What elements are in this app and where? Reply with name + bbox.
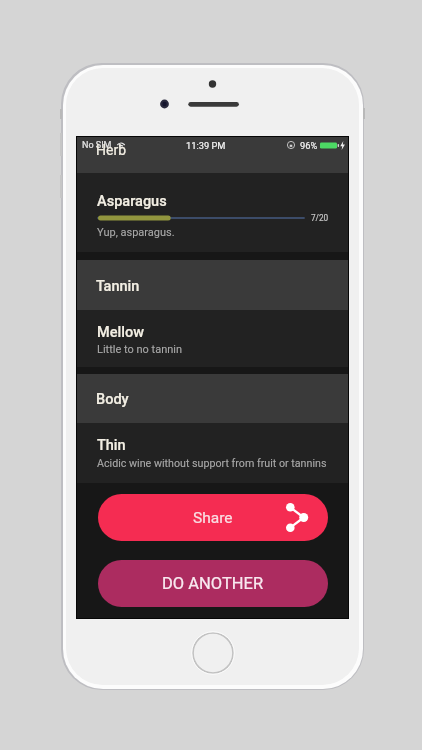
button[interactable]: Tannin — [77, 260, 348, 310]
staticText: Asparagus — [97, 193, 167, 210]
staticText: Little to no tannin — [97, 343, 183, 356]
staticText: Share — [193, 509, 233, 527]
button[interactable]: DO ANOTHER — [98, 560, 328, 607]
staticText: Thin — [97, 437, 126, 454]
button[interactable]: Thin — [77, 423, 348, 483]
staticText: Tannin — [96, 278, 140, 295]
staticText: 7/20 — [311, 213, 329, 223]
button[interactable]: Share — [98, 494, 328, 541]
staticText: Acidic wine without support from fruit o… — [97, 457, 327, 470]
other: Share — [286, 503, 308, 532]
button[interactable]: Asparagus — [77, 173, 348, 252]
staticText: Body — [96, 391, 129, 408]
staticText: 96% — [300, 140, 318, 151]
staticText: DO ANOTHER — [162, 574, 264, 593]
staticText: Mellow — [97, 324, 144, 341]
staticText: No SIM — [82, 140, 112, 151]
button[interactable]: Mellow — [77, 310, 348, 367]
button[interactable]: Body — [77, 374, 348, 423]
staticText: 11:39 PM — [186, 140, 226, 151]
staticText: Herb — [96, 142, 127, 158]
staticText: Yup, asparagus. — [97, 226, 175, 239]
